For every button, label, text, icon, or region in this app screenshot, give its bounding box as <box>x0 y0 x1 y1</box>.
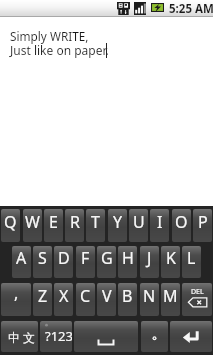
button[interactable]: C <box>76 283 95 316</box>
staticText: T <box>91 211 100 233</box>
button[interactable]: Enter <box>170 321 212 352</box>
button[interactable]: W <box>23 209 42 242</box>
staticText: G <box>101 247 113 269</box>
staticText: S <box>38 247 47 269</box>
staticText: , <box>14 283 19 304</box>
button[interactable]: Z <box>33 283 52 316</box>
button[interactable]: T <box>86 209 105 242</box>
staticText: I <box>157 211 163 233</box>
button[interactable]: D <box>54 246 73 278</box>
button[interactable]: O <box>172 209 191 242</box>
button[interactable]: N <box>140 283 159 316</box>
button[interactable]: K <box>161 246 180 278</box>
button[interactable]: Space <box>74 321 138 352</box>
staticText: DEL <box>191 287 204 297</box>
button[interactable]: Q <box>1 209 20 242</box>
button[interactable]: S <box>33 246 52 278</box>
staticText: M <box>163 285 178 307</box>
staticText: 中 文 <box>8 329 36 345</box>
staticText: D <box>58 247 70 269</box>
button[interactable]: M <box>161 283 180 316</box>
button[interactable]: J <box>140 246 159 278</box>
staticText: W <box>25 211 40 233</box>
button[interactable]: U <box>129 209 148 242</box>
staticText: R <box>70 211 80 233</box>
staticText: A <box>16 247 27 269</box>
staticText: Z <box>38 285 48 307</box>
staticText: 5:25 AM <box>169 1 213 17</box>
staticText: Simply WRITE, <box>10 28 89 44</box>
button[interactable]: B <box>118 283 137 316</box>
button[interactable]: Period <box>141 321 168 352</box>
staticText: Y <box>113 211 123 233</box>
button[interactable]: Delete <box>182 283 212 316</box>
staticText: L <box>187 247 196 269</box>
staticText: E <box>49 211 58 233</box>
staticText: C <box>80 285 91 307</box>
button[interactable]: E <box>44 209 63 242</box>
staticText: K <box>166 247 176 269</box>
button[interactable]: ?123 <box>40 321 72 352</box>
staticText: O <box>175 211 188 233</box>
staticText: U <box>133 211 145 233</box>
button[interactable]: X <box>54 283 73 316</box>
button[interactable]: A <box>12 246 31 278</box>
button[interactable]: Y <box>108 209 127 242</box>
staticText: P <box>198 211 208 233</box>
button[interactable]: G <box>97 246 116 278</box>
button[interactable]: I <box>150 209 169 242</box>
staticText: B <box>122 285 133 307</box>
staticText: Q <box>4 211 17 233</box>
staticText: F <box>81 247 90 269</box>
staticText: H <box>122 247 134 269</box>
staticText: V <box>102 285 112 307</box>
button[interactable]: H <box>118 246 137 278</box>
button[interactable]: P <box>193 209 212 242</box>
staticText: ?123 <box>45 327 72 345</box>
staticText: N <box>143 285 156 307</box>
staticText: X <box>59 285 69 307</box>
button[interactable]: V <box>97 283 116 316</box>
staticText: J <box>147 247 152 269</box>
button[interactable]: , <box>1 283 31 316</box>
button[interactable]: R <box>65 209 84 242</box>
staticText: Just like on paper. <box>10 42 109 58</box>
button[interactable]: F <box>76 246 95 278</box>
button[interactable]: L <box>182 246 201 278</box>
button[interactable]: 中 文 <box>1 321 38 352</box>
